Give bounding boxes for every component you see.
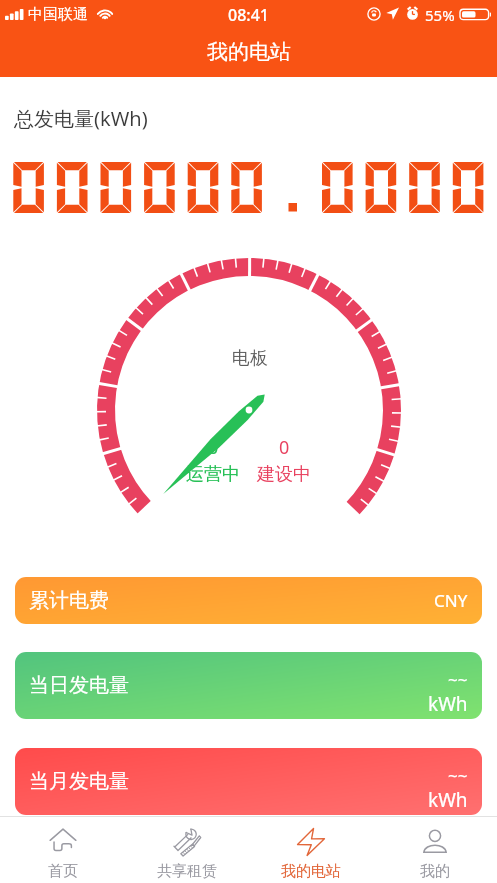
staticText: 中国联通: [28, 5, 88, 24]
staticText: 我的电站: [281, 862, 341, 881]
button[interactable]: 当月发电量: [15, 748, 482, 815]
staticText: 累计电费: [29, 588, 109, 613]
staticText: 0: [279, 435, 290, 460]
staticText: 电板: [232, 347, 268, 370]
staticText: ~~: [448, 668, 468, 691]
button[interactable]: My power station: [249, 820, 373, 881]
staticText: ~~: [448, 764, 468, 787]
staticText: 0: [208, 435, 219, 460]
staticText: 当月发电量: [29, 769, 129, 794]
staticText: kWh: [428, 691, 468, 717]
button[interactable]: Mine: [373, 820, 497, 881]
staticText: 08:41: [228, 4, 269, 26]
staticText: 建设中: [257, 463, 311, 486]
staticText: CNY: [434, 589, 468, 612]
button[interactable]: 当日发电量: [15, 652, 482, 719]
staticText: kWh: [428, 787, 468, 813]
staticText: 55%: [425, 5, 455, 25]
staticText: 首页: [48, 862, 78, 881]
staticText: 共享租赁: [157, 862, 217, 881]
staticText: 我的电站: [207, 39, 291, 65]
staticText: 运营中: [186, 463, 240, 486]
staticText: 我的: [420, 862, 450, 881]
button[interactable]: 累计电费: [15, 577, 482, 624]
button[interactable]: Shared rental: [125, 820, 249, 881]
button[interactable]: Home: [0, 820, 125, 881]
staticText: 当日发电量: [29, 673, 129, 698]
staticText: 总发电量(kWh): [14, 105, 148, 132]
